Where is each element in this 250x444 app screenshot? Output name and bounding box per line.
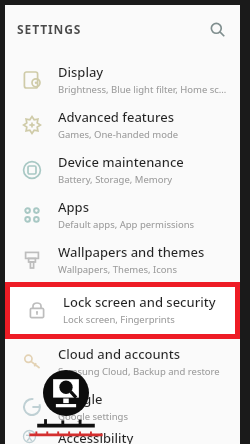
button[interactable]: Cloud and accounts <box>5 339 240 384</box>
staticText: Google settings <box>58 410 129 423</box>
staticText: Default apps, App permissions <box>58 218 195 231</box>
button[interactable]: Display <box>5 57 240 102</box>
button[interactable]: Lock screen and security <box>10 287 235 332</box>
staticText: Display <box>58 63 104 81</box>
staticText: Accessibility <box>58 429 134 444</box>
staticText: Cloud and accounts <box>58 345 181 363</box>
button[interactable]: Device maintenance <box>5 147 240 192</box>
staticText: Samsung Cloud, Backup and restore <box>58 365 220 378</box>
staticText: Apps <box>58 198 89 216</box>
button[interactable]: Advanced features <box>5 102 240 147</box>
staticText: SETTINGS <box>17 21 82 37</box>
staticText: Device maintenance <box>58 153 184 171</box>
staticText: Games, One-handed mode <box>58 128 179 141</box>
button[interactable]: Search <box>202 14 232 44</box>
staticText: Battery, Storage, Memory <box>58 173 173 186</box>
staticText: Brightness, Blue light filter, Home scre… <box>58 83 230 96</box>
staticText: Google <box>58 390 103 408</box>
button[interactable]: Wallpapers and themes <box>5 237 240 282</box>
staticText: Wallpapers, Themes, Icons <box>58 263 178 276</box>
staticText: Wallpapers and themes <box>58 243 205 261</box>
button[interactable]: Apps <box>5 192 240 237</box>
staticText: Advanced features <box>58 108 174 126</box>
staticText: Lock screen, Fingerprints <box>63 313 175 326</box>
button[interactable]: Accessibility <box>5 429 240 444</box>
staticText: Lock screen and security <box>63 293 216 311</box>
button[interactable]: Google <box>5 384 240 429</box>
